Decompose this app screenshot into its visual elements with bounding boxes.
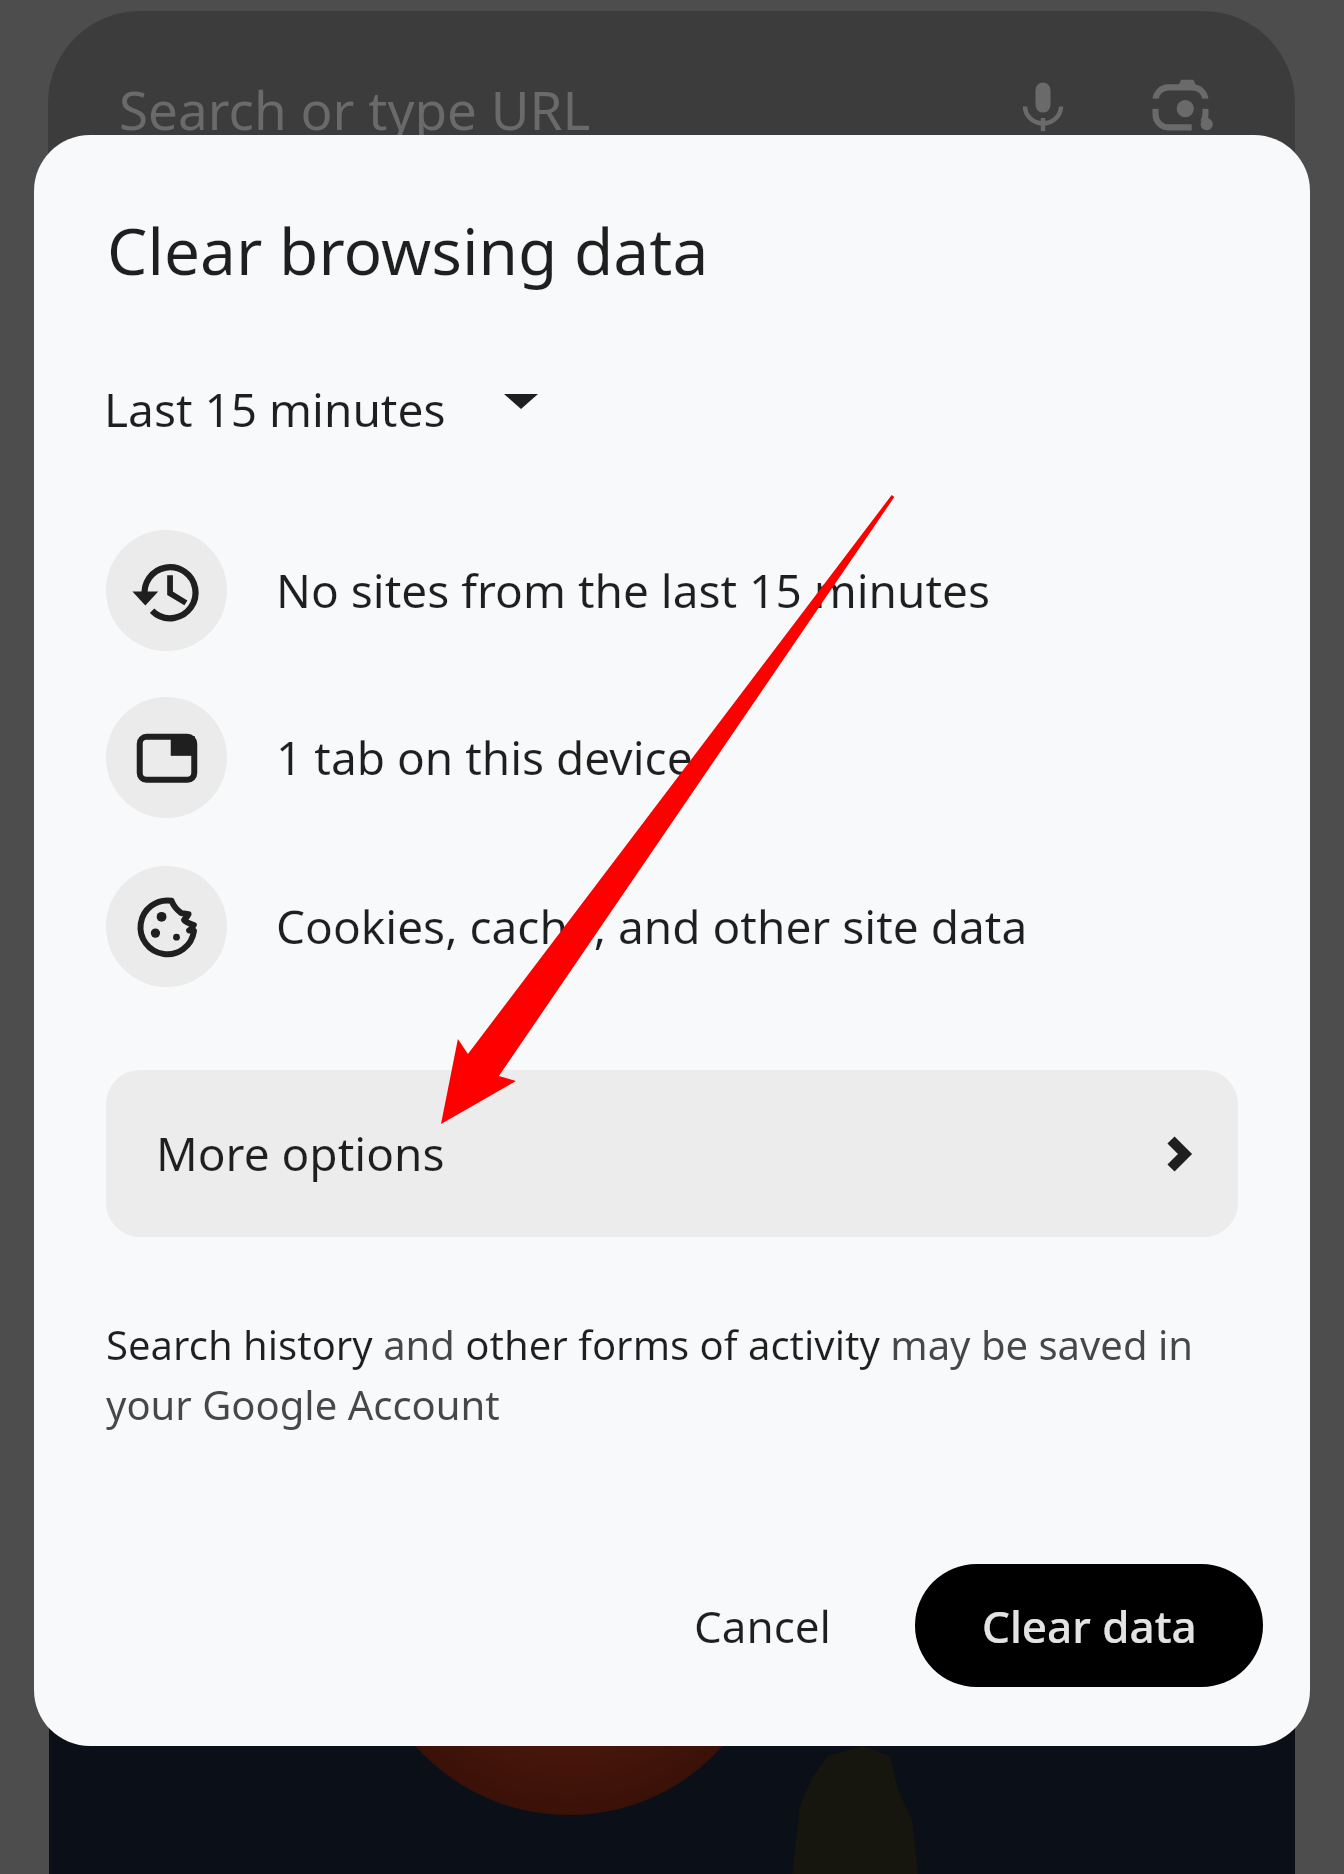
button[interactable]: More options	[106, 1070, 1238, 1237]
button[interactable]: Search or type URL	[48, 11, 1295, 211]
staticText: Cookies, cache, and other site data	[276, 895, 1028, 958]
staticText: Last 15 minutes	[104, 378, 446, 441]
button[interactable]: 1 tab on this device	[34, 683, 1310, 831]
button[interactable]: Voice search	[1013, 73, 1073, 133]
button[interactable]: Last 15 minutes	[91, 368, 556, 451]
staticText: Clear data	[982, 1596, 1197, 1656]
staticText: 1 tab on this device	[276, 726, 693, 789]
staticText: More options	[156, 1122, 445, 1185]
staticText: No sites from the last 15 minutes	[276, 559, 991, 622]
staticText: Search or type URL	[119, 73, 591, 145]
button[interactable]: Cancel	[650, 1564, 875, 1687]
button[interactable]: No sites from the last 15 minutes	[34, 516, 1310, 664]
staticText: Clear browsing data	[107, 207, 709, 294]
staticText: Search history and other forms of activi…	[106, 1317, 1201, 1433]
button[interactable]: Google Lens	[1152, 73, 1216, 137]
button[interactable]: Cookies, cache, and other site data	[34, 852, 1310, 1000]
staticText: Cancel	[694, 1596, 831, 1656]
button[interactable]: Clear data	[915, 1564, 1263, 1687]
